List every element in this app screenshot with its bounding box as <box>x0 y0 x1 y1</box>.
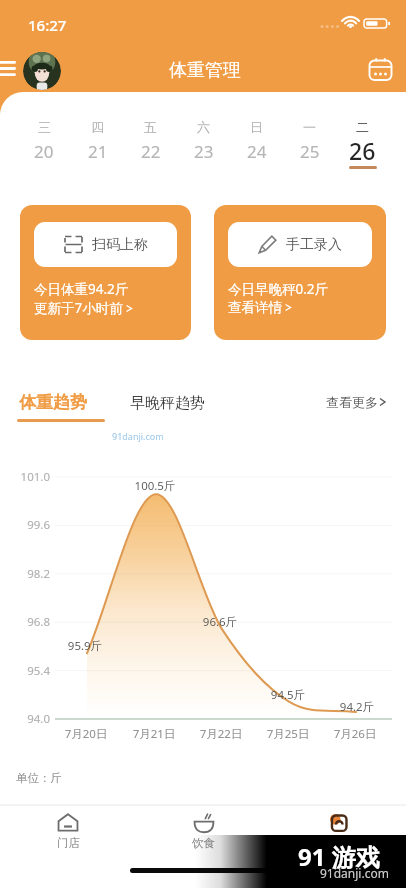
button[interactable]: 体重 <box>271 807 406 850</box>
staticText: 六 <box>197 119 210 135</box>
staticText: 今日早晚秤0.2斤 <box>228 280 329 298</box>
button[interactable]: 三 <box>17 119 71 163</box>
button[interactable]: 体重趋势 <box>19 392 87 413</box>
staticText: 91danji.com <box>112 430 164 442</box>
staticText: 100.5斤 <box>121 478 189 494</box>
button[interactable]: 早晚秤趋势 <box>130 394 205 413</box>
staticText: 21 <box>88 140 108 163</box>
staticText: 24 <box>247 140 267 163</box>
staticText: 96.6斤 <box>186 614 254 630</box>
staticText: 22 <box>141 140 161 163</box>
staticText: 7月22日 <box>188 726 254 742</box>
staticText: 26 <box>349 135 376 166</box>
button[interactable]: Profile <box>23 52 61 90</box>
staticText: 95.4 <box>8 663 50 679</box>
staticText: 查看详情 <box>228 299 282 316</box>
staticText: 25 <box>300 140 320 163</box>
staticText: 三 <box>38 119 51 135</box>
staticText: 更新于7小时前 <box>34 299 123 317</box>
staticText: 99.6 <box>8 517 50 533</box>
staticText: 扫码上称 <box>92 236 148 254</box>
button[interactable]: Menu <box>0 60 16 77</box>
staticText: 7月26日 <box>322 726 388 742</box>
staticText: 四 <box>91 119 104 135</box>
staticText: 95.9斤 <box>51 638 119 654</box>
staticText: 96.8 <box>8 614 50 630</box>
staticText: 98.2 <box>8 566 50 582</box>
staticText: 查看更多 <box>326 394 378 410</box>
staticText: 94.0 <box>8 711 50 727</box>
staticText: 日 <box>250 119 263 135</box>
staticText: 94.5斤 <box>254 687 322 703</box>
staticText: 二 <box>356 119 369 135</box>
button[interactable]: 日 <box>230 119 283 163</box>
button[interactable]: Calendar <box>366 55 394 83</box>
staticText: 23 <box>194 140 214 163</box>
staticText: 手工录入 <box>286 236 342 254</box>
staticText: 一 <box>303 119 316 135</box>
staticText: 7月25日 <box>255 726 321 742</box>
staticText: 94.2斤 <box>323 699 391 715</box>
staticText: 7月21日 <box>121 726 187 742</box>
button[interactable]: 四 <box>71 119 124 163</box>
button[interactable]: 手工录入 <box>214 205 386 340</box>
staticText: 单位：斤 <box>16 771 62 785</box>
staticText: 体重管理 <box>169 59 241 82</box>
button[interactable]: 饮食 <box>136 807 271 850</box>
button[interactable]: 六 <box>177 119 230 163</box>
button[interactable]: 一 <box>283 119 336 163</box>
staticText: 体重 <box>327 836 350 850</box>
staticText: 五 <box>144 119 157 135</box>
staticText: 今日体重94.2斤 <box>34 280 129 298</box>
button[interactable]: 五 <box>124 119 177 163</box>
staticText: 16:27 <box>28 15 67 35</box>
button[interactable]: 手工录入 <box>228 222 372 267</box>
staticText: 门店 <box>57 836 80 850</box>
staticText: 20 <box>34 140 54 163</box>
button[interactable]: 二 <box>336 119 389 169</box>
button[interactable]: 扫码上称 <box>34 222 177 267</box>
staticText: 101.0 <box>8 469 50 485</box>
button[interactable]: 查看更多 <box>326 394 388 410</box>
staticText: 91danji.com <box>320 865 389 881</box>
staticText: 7月20日 <box>53 726 119 742</box>
button[interactable]: 门店 <box>0 807 136 850</box>
staticText: 91 游戏 <box>298 840 380 873</box>
staticText: 饮食 <box>192 836 215 850</box>
button[interactable]: 扫码上称 <box>20 205 191 340</box>
